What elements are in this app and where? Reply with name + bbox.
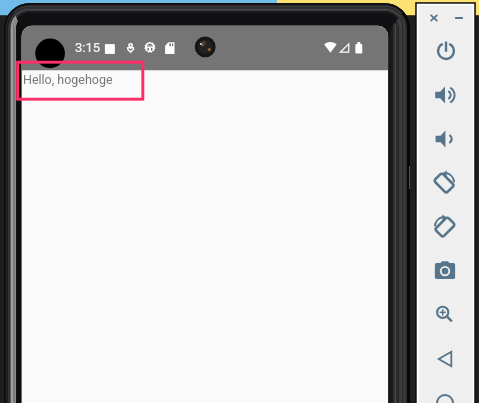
staticText: 3:15 [75, 40, 101, 55]
button[interactable]: Volume down [431, 126, 457, 152]
staticText: Hello, hogehoge [23, 72, 113, 87]
button[interactable]: Take screenshot [431, 258, 459, 284]
button[interactable]: Home [431, 389, 459, 403]
button[interactable]: Zoom [431, 301, 459, 329]
button[interactable]: Rotate right [431, 213, 459, 241]
button[interactable]: Rotate left [430, 169, 458, 197]
button[interactable]: Minimize [449, 9, 469, 27]
button[interactable]: Back [431, 345, 459, 373]
button[interactable]: Power [433, 38, 459, 64]
button[interactable]: Volume up [432, 82, 458, 108]
button[interactable]: Close [424, 9, 444, 27]
